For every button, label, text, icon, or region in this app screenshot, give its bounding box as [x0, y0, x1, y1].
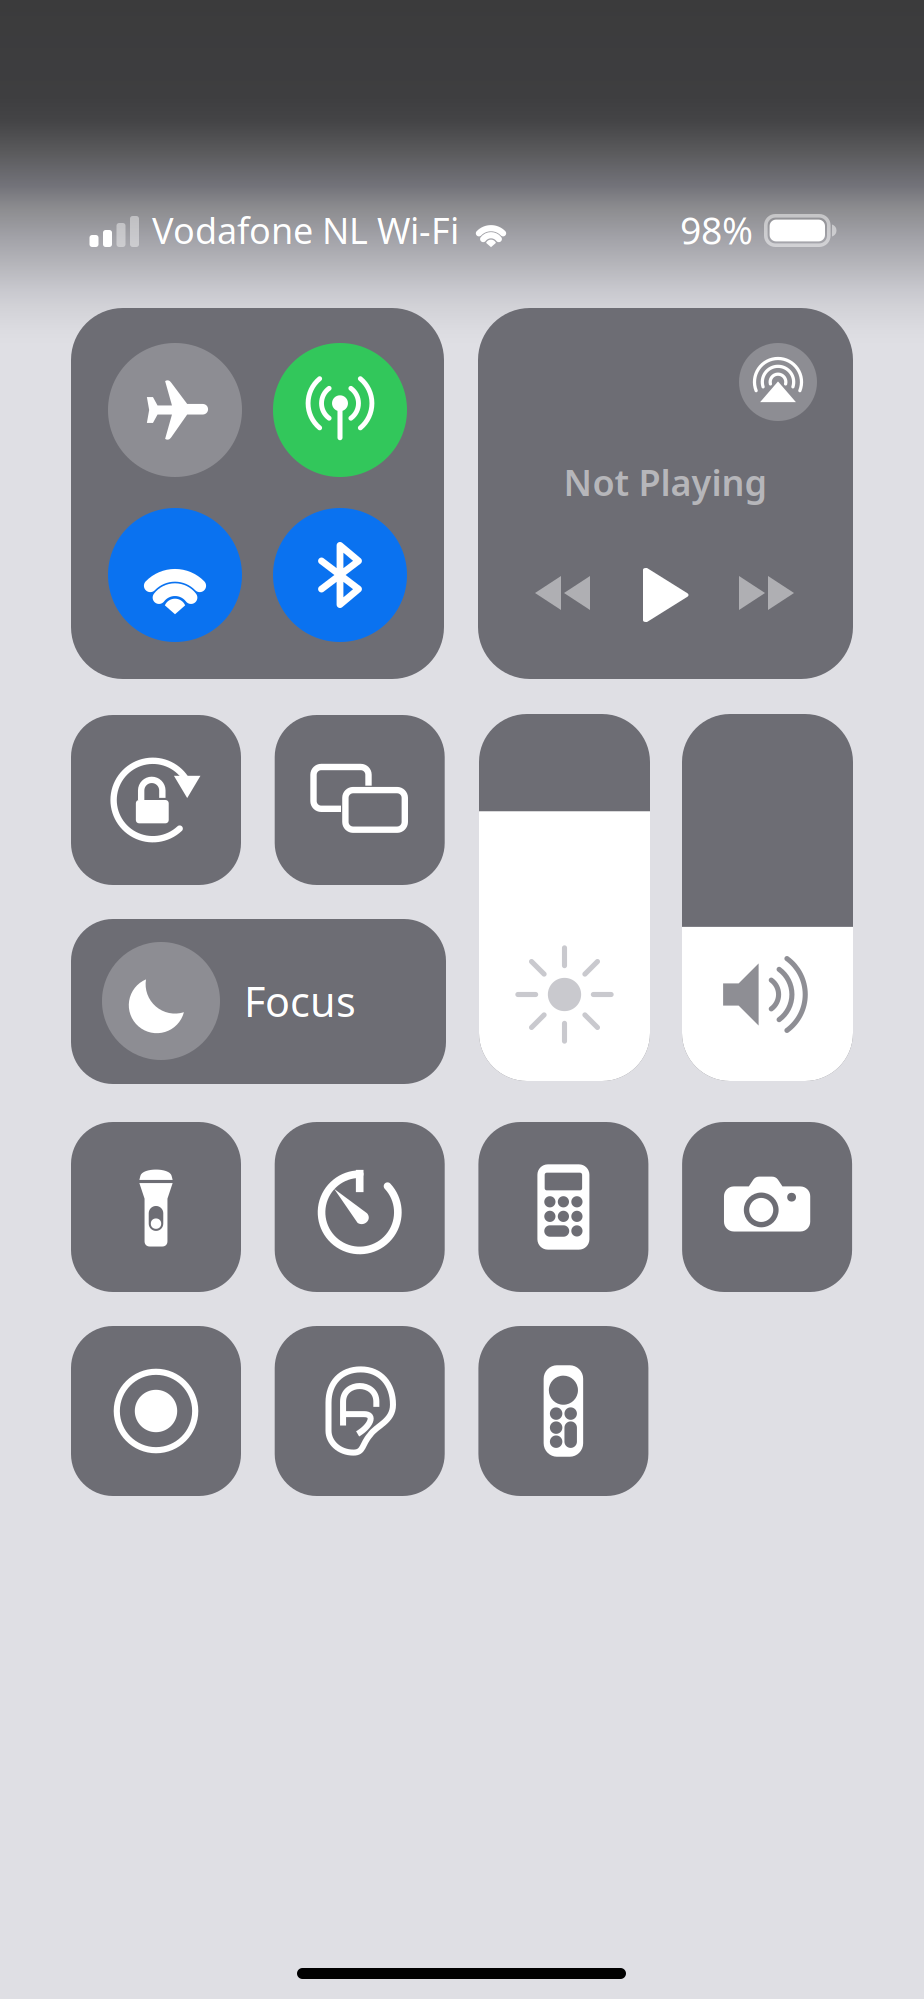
- button[interactable]: Bluetooth: [273, 508, 407, 642]
- button[interactable]: Next: [732, 569, 802, 617]
- button[interactable]: Hearing: [275, 1326, 445, 1496]
- staticText: Vodafone NL Wi-Fi: [152, 206, 459, 254]
- button[interactable]: Cellular Data: [273, 343, 407, 477]
- button[interactable]: Flashlight: [71, 1122, 241, 1292]
- button[interactable]: Rotation Lock: [71, 715, 241, 885]
- button[interactable]: Volume: [682, 714, 853, 1081]
- staticText: 98%: [680, 205, 753, 255]
- button[interactable]: Apple TV Remote: [478, 1326, 648, 1496]
- button[interactable]: Play: [630, 561, 700, 629]
- staticText: Focus: [244, 974, 356, 1028]
- button[interactable]: Previous: [528, 569, 598, 617]
- staticText: Not Playing: [563, 458, 767, 506]
- button[interactable]: Wi-Fi: [108, 508, 242, 642]
- button[interactable]: Camera: [682, 1122, 852, 1292]
- button[interactable]: Timer: [275, 1122, 445, 1292]
- button[interactable]: Screen Recording: [71, 1326, 241, 1496]
- button[interactable]: Screen Mirroring: [275, 715, 445, 885]
- button[interactable]: AirPlay: [739, 343, 817, 421]
- button[interactable]: Brightness: [479, 714, 650, 1081]
- button[interactable]: Airplane Mode: [108, 343, 242, 477]
- button[interactable]: Focus: [71, 919, 446, 1084]
- button[interactable]: Calculator: [478, 1122, 648, 1292]
